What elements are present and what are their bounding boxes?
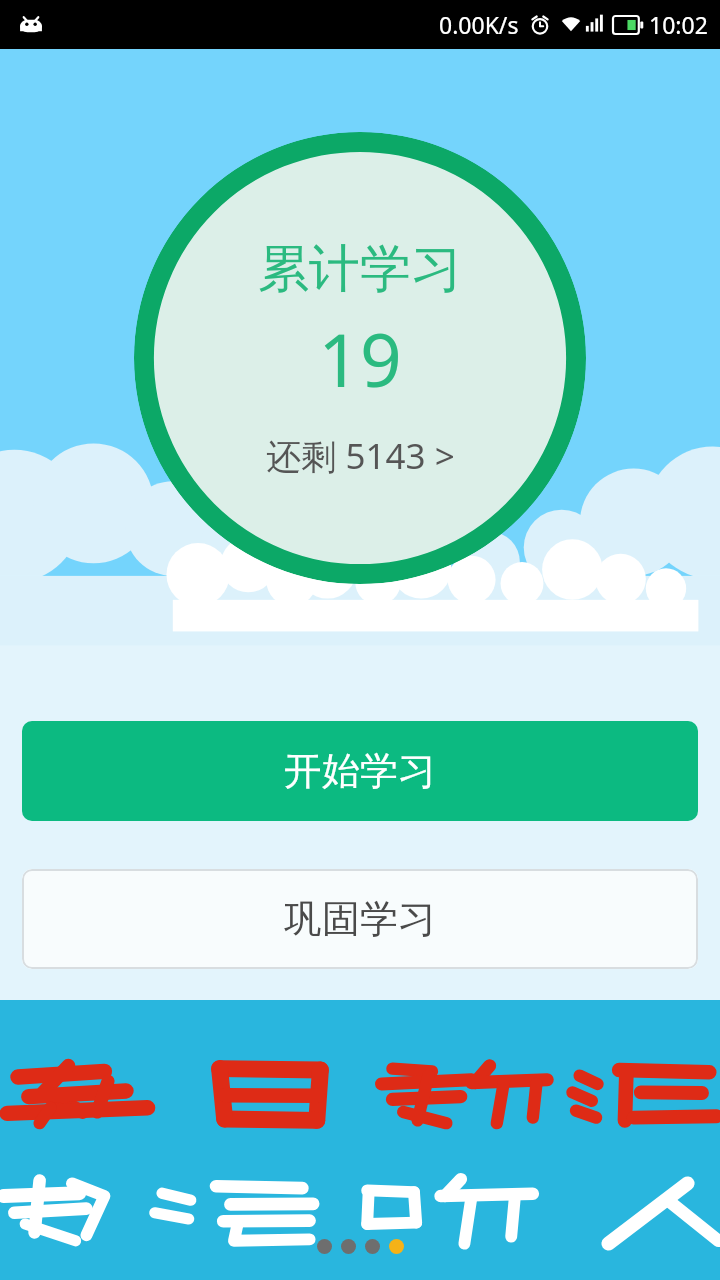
staticText: 19 [318,309,402,408]
staticText: 0.00K/s [439,9,519,40]
button[interactable]: 巩固学习 [22,869,698,969]
button[interactable]: 累计学习 [134,132,586,584]
button[interactable]: 每日新词 banner [0,1000,720,1280]
staticText: 还剩 5143 > [266,432,455,480]
button[interactable] [341,1239,356,1254]
button[interactable] [317,1239,332,1254]
button[interactable]: 开始学习 [22,721,698,821]
staticText: 累计学习 [258,237,462,301]
button[interactable] [389,1239,404,1254]
staticText: 开始学习 [284,747,436,795]
staticText: 巩固学习 [284,895,436,943]
staticText: 10:02 [649,9,708,40]
button[interactable] [365,1239,380,1254]
